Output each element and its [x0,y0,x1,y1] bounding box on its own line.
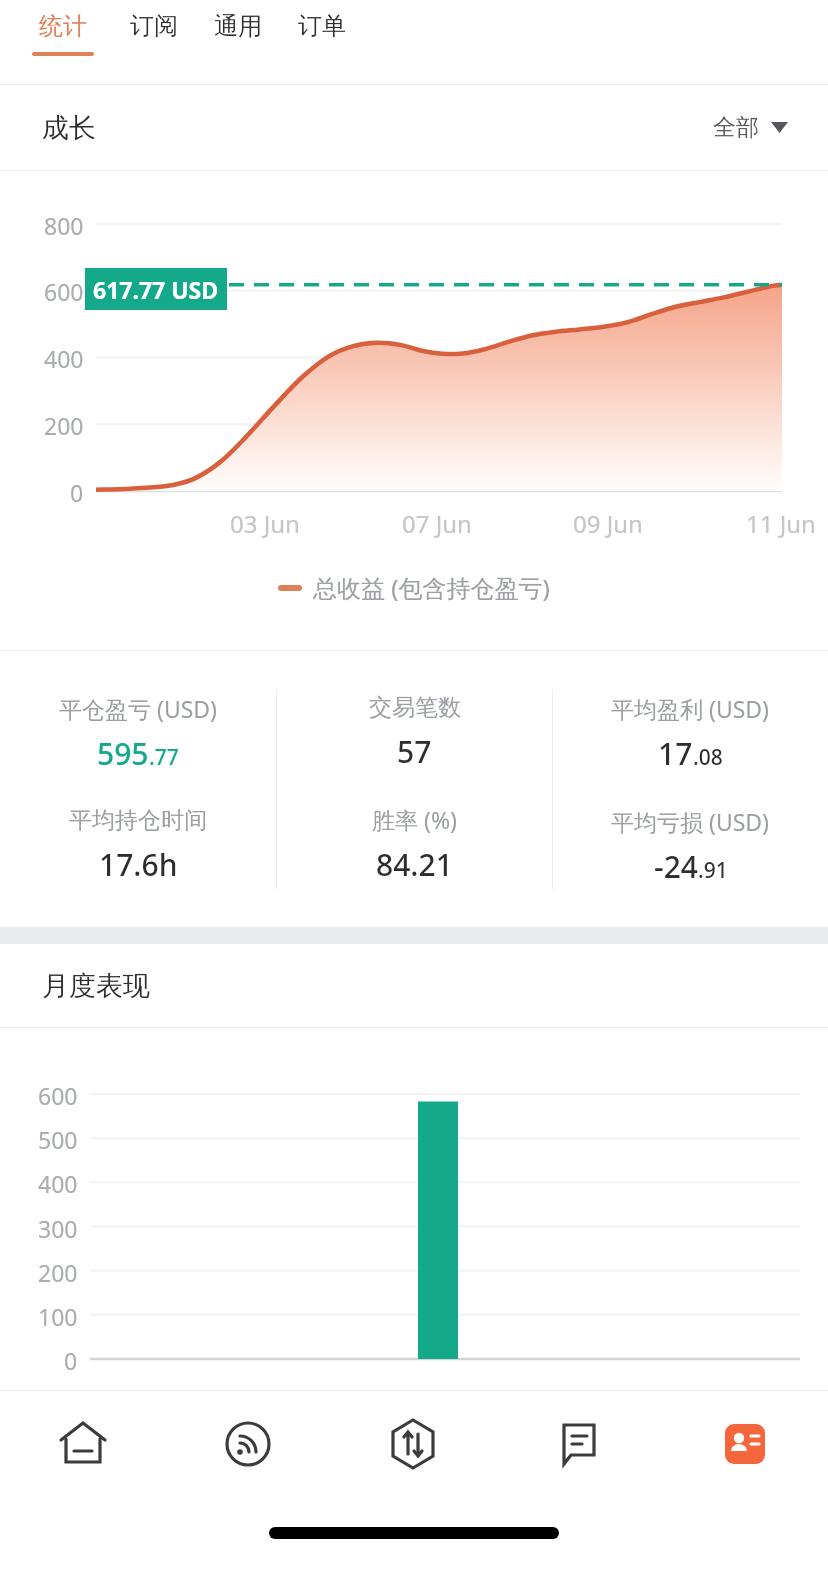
staticText: 617.77 USD [93,274,219,305]
staticText: .91 [698,856,728,885]
staticText: 0 [70,477,84,508]
staticText: 平均盈利 (USD) [611,693,770,724]
staticText: 订阅 [130,11,178,41]
staticText: 200 [38,1257,78,1288]
button[interactable]: 订阅 [112,0,196,84]
staticText: .77 [149,743,179,772]
button[interactable]: Messages [496,1391,662,1497]
button[interactable]: Signals [165,1391,330,1497]
staticText: 平均持仓时间 [69,806,207,835]
staticText: 平均亏损 (USD) [611,806,770,837]
staticText: 200 [44,410,84,441]
button[interactable]: Home [0,1391,165,1497]
staticText: 17.6h [99,844,178,885]
staticText: 595 [97,733,149,774]
staticText: 通用 [214,11,262,41]
staticText: 600 [44,276,84,307]
staticText: 400 [44,343,84,374]
staticText: 300 [38,1213,78,1244]
staticText: 600 [38,1080,78,1111]
staticText: 成长 [42,111,96,145]
button[interactable]: 统计 [14,0,112,84]
staticText: 平仓盈亏 (USD) [59,693,218,724]
staticText: 11 Jun [746,507,816,540]
staticText: 月度表现 [42,969,150,1003]
staticText: 总收益 (包含持仓盈亏) [313,571,550,604]
staticText: 100 [38,1301,78,1332]
staticText: 07 Jun [402,507,472,540]
staticText: -24 [654,846,698,887]
staticText: 84.21 [376,844,453,885]
button[interactable]: 通用 [196,0,280,84]
staticText: 57 [397,731,432,772]
staticText: 胜率 (%) [372,804,457,835]
staticText: 03 Jun [230,507,300,540]
button[interactable]: Trade [330,1391,496,1497]
staticText: 全部 [713,113,759,142]
staticText: 500 [38,1124,78,1155]
button[interactable]: Profile [662,1391,828,1497]
staticText: 统计 [39,11,87,41]
staticText: 17 [658,733,693,774]
staticText: 800 [44,210,84,241]
staticText: 09 Jun [573,507,643,540]
staticText: 400 [38,1168,78,1199]
button[interactable]: 订单 [280,0,364,84]
staticText: 交易笔数 [369,693,461,722]
staticText: 0 [64,1345,78,1376]
button[interactable]: 全部 [713,113,828,142]
staticText: .08 [693,743,723,772]
staticText: 订单 [298,11,346,41]
